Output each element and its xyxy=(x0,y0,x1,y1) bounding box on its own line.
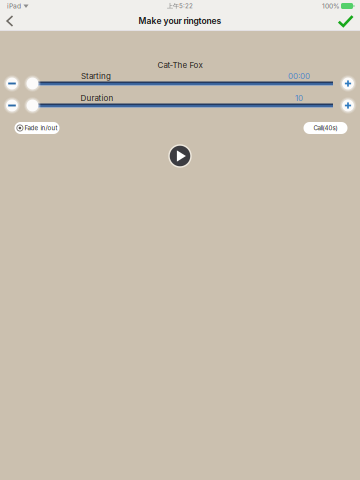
button[interactable]: Play xyxy=(167,143,193,169)
staticText: Make your ringtones xyxy=(138,16,221,26)
staticText: Call(40s) xyxy=(313,124,337,132)
staticText: Duration xyxy=(80,93,113,103)
staticText: iPad xyxy=(7,2,21,10)
staticText: 上午5:22 xyxy=(167,2,193,10)
button[interactable]: Fade in/out xyxy=(14,121,59,135)
staticText: Fade in/out xyxy=(24,124,57,132)
staticText: 00:00 xyxy=(288,71,310,81)
button[interactable]: Increase xyxy=(339,75,356,92)
staticText: 100% xyxy=(322,2,340,10)
button[interactable]: Decrease xyxy=(3,75,20,92)
button[interactable]: Back xyxy=(0,12,20,30)
staticText: 10 xyxy=(295,93,303,103)
button[interactable]: Call(40s) xyxy=(303,121,347,135)
staticText: Starting xyxy=(81,71,111,81)
button[interactable]: Done xyxy=(331,12,360,30)
button[interactable]: Increase xyxy=(339,97,356,114)
staticText: Cat-The Fox xyxy=(157,60,202,70)
button[interactable]: Decrease xyxy=(3,97,20,114)
